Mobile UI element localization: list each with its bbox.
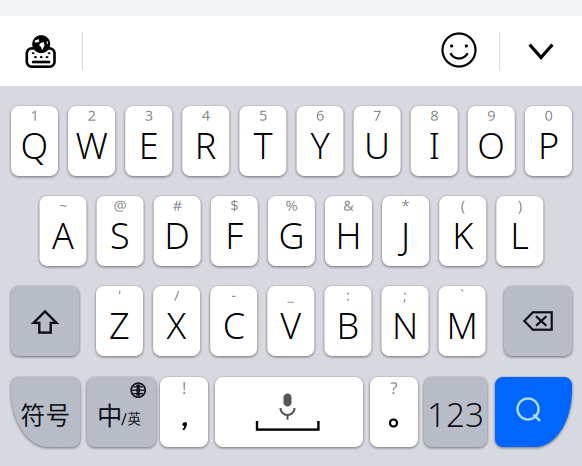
staticText: :	[346, 285, 350, 305]
staticText: !	[182, 377, 186, 399]
button[interactable]: )	[496, 196, 543, 266]
button[interactable]: (	[439, 196, 486, 266]
button[interactable]: %	[268, 196, 315, 266]
button[interactable]: 3	[125, 106, 172, 176]
button[interactable]: _	[267, 286, 314, 356]
staticText: T	[253, 121, 272, 169]
staticText: L	[510, 211, 529, 259]
staticText: @	[114, 195, 127, 215]
staticText: P	[538, 121, 559, 169]
staticText: 1	[30, 105, 38, 125]
staticText: R	[195, 121, 217, 169]
button[interactable]: Chinese English toggle	[87, 377, 156, 447]
staticText: *	[402, 195, 410, 215]
button[interactable]: 5	[239, 106, 286, 176]
button[interactable]: @	[97, 196, 144, 266]
button[interactable]: *	[382, 196, 429, 266]
button[interactable]: /	[153, 286, 200, 356]
button[interactable]: 1	[11, 106, 58, 176]
button[interactable]: Delete	[504, 286, 572, 356]
staticText: ;	[403, 285, 407, 305]
staticText: M	[447, 301, 478, 349]
staticText: /	[174, 285, 179, 305]
button[interactable]: -	[210, 286, 257, 356]
staticText: F	[225, 211, 243, 259]
staticText: Q	[20, 121, 48, 169]
button[interactable]: 123	[424, 377, 487, 447]
staticText: B	[336, 301, 359, 349]
staticText: I	[429, 121, 440, 169]
button[interactable]: #	[154, 196, 201, 266]
staticText: 英	[127, 408, 140, 428]
button[interactable]: ~	[39, 196, 86, 266]
staticText: 4	[202, 105, 210, 125]
staticText: U	[364, 121, 390, 169]
staticText: $	[230, 195, 238, 215]
staticText: 0	[544, 105, 552, 125]
staticText: 5	[259, 105, 267, 125]
staticText: 符号	[20, 396, 70, 432]
staticText: 3	[145, 105, 153, 125]
staticText: Y	[310, 121, 329, 169]
staticText: %	[285, 195, 297, 215]
button[interactable]: ;	[381, 286, 428, 356]
button[interactable]: Shift	[11, 286, 79, 356]
button[interactable]: 6	[296, 106, 343, 176]
button[interactable]: Space	[215, 377, 363, 447]
button[interactable]: Hide keyboard	[528, 43, 554, 59]
staticText: H	[335, 211, 361, 259]
staticText: /	[121, 408, 127, 430]
button[interactable]: 8	[411, 106, 458, 176]
staticText: X	[167, 301, 187, 349]
staticText: 8	[430, 105, 438, 125]
button[interactable]: 7	[354, 106, 401, 176]
staticText: (	[461, 195, 465, 215]
staticText: O	[477, 121, 505, 169]
staticText: V	[280, 301, 301, 349]
staticText: 9	[487, 105, 495, 125]
staticText: 123	[427, 392, 484, 436]
staticText: ?	[390, 377, 397, 399]
staticText: -	[231, 285, 236, 305]
button[interactable]: 4	[182, 106, 229, 176]
staticText: 2	[88, 105, 96, 125]
staticText: G	[278, 211, 304, 259]
button[interactable]: 2	[68, 106, 115, 176]
staticText: E	[139, 121, 159, 169]
staticText: W	[76, 121, 108, 169]
button[interactable]: 符号	[11, 377, 80, 447]
staticText: ~	[59, 195, 67, 215]
button[interactable]: 9	[468, 106, 515, 176]
staticText: J	[401, 211, 410, 259]
staticText: N	[392, 301, 418, 349]
staticText: K	[452, 211, 473, 259]
staticText: &	[343, 195, 354, 215]
button[interactable]: $	[211, 196, 258, 266]
staticText: C	[223, 301, 245, 349]
staticText: D	[164, 211, 190, 259]
staticText: Z	[109, 301, 130, 349]
button[interactable]: &	[325, 196, 372, 266]
staticText: '	[118, 285, 121, 305]
staticText: A	[52, 211, 74, 259]
button[interactable]: !	[160, 377, 208, 447]
button[interactable]: '	[96, 286, 143, 356]
staticText: )	[518, 195, 522, 215]
staticText: _	[287, 285, 294, 305]
button[interactable]: 0	[525, 106, 572, 176]
button[interactable]: Search	[495, 377, 572, 447]
button[interactable]: Next keyboard	[24, 34, 58, 68]
staticText: #	[173, 195, 182, 215]
button[interactable]: Period	[370, 377, 418, 447]
staticText: S	[110, 211, 130, 259]
staticText: `	[460, 285, 464, 305]
button[interactable]: :	[324, 286, 371, 356]
button[interactable]: Emoji	[441, 32, 477, 68]
staticText: 6	[316, 105, 324, 125]
button[interactable]: `	[439, 286, 486, 356]
staticText: 中	[97, 396, 122, 432]
staticText: 7	[373, 105, 381, 125]
